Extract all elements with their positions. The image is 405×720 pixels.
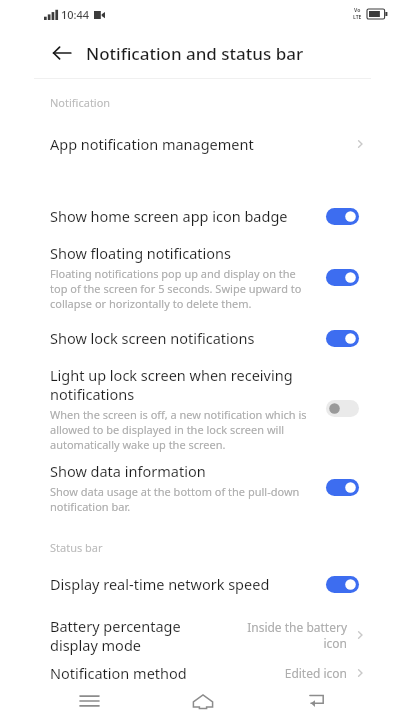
staticText: Vo [354,7,361,14]
button[interactable]: Recent apps [65,682,113,720]
staticText: Edited icon [284,665,347,681]
staticText: Show lock screen notifications [50,328,255,348]
staticText: LTE [353,14,362,21]
button[interactable]: Battery percentage display mode [0,607,405,663]
button[interactable]: Home [179,682,227,720]
staticText: Battery percentage display mode [50,616,181,655]
staticText: App notification management [50,134,254,154]
button[interactable]: Back [46,37,78,69]
button[interactable]: Display real-time network speed [0,561,405,607]
button[interactable]: Back [292,682,340,720]
staticText: When the screen is off, a new notificati… [50,407,316,452]
staticText: Display real-time network speed [50,574,270,594]
button[interactable]: Light up lock screen when receiving noti… [0,360,405,456]
staticText: 10:44 [61,7,90,22]
staticText: Status bar [50,540,103,555]
button[interactable]: Show home screen app icon badge [0,194,405,238]
staticText: Show home screen app icon badge [50,206,288,226]
button[interactable]: App notification management [0,116,405,172]
staticText: Show data information [50,461,206,481]
staticText: Notification [50,95,111,110]
staticText: Notification method [50,663,187,682]
button[interactable]: Show lock screen notifications [0,316,405,360]
staticText: Show data usage at the bottom of the pul… [50,484,316,514]
staticText: Show floating notifications [50,243,232,263]
button[interactable]: Notification method [0,663,405,682]
staticText: Light up lock screen when receiving noti… [50,365,316,404]
staticText: Floating notifications pop up and displa… [50,266,316,311]
staticText: Notification and status bar [86,42,304,65]
button[interactable]: Show data information [0,456,405,518]
staticText: Inside the battery icon [247,619,347,651]
button[interactable]: Show floating notifications [0,238,405,316]
